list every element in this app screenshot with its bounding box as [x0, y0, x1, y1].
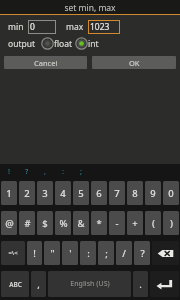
staticText: ! — [8, 166, 11, 176]
button[interactable]: Cancel — [4, 56, 87, 69]
button[interactable]: =\< — [1, 241, 25, 265]
staticText: 0 — [30, 21, 35, 33]
button[interactable]: ( — [145, 211, 161, 235]
staticText: ; — [105, 247, 108, 260]
button[interactable]: & — [73, 211, 89, 235]
button[interactable]: ; — [98, 241, 114, 265]
button[interactable]: / — [116, 241, 132, 265]
staticText: 9 — [150, 187, 156, 200]
button[interactable]: ) — [163, 211, 179, 235]
staticText: ) — [170, 217, 173, 230]
staticText: 0 — [168, 187, 174, 200]
staticText: # — [24, 217, 31, 230]
staticText: =\< — [8, 249, 18, 257]
staticText: OK — [129, 58, 140, 68]
staticText: : — [62, 166, 65, 176]
staticText: 6 — [96, 187, 102, 200]
staticText: 4 — [60, 187, 66, 200]
staticText: ? — [25, 166, 29, 176]
staticText: 3 — [42, 187, 48, 200]
staticText: 1 — [6, 187, 12, 200]
staticText: English (US) — [70, 279, 110, 289]
button[interactable]: + — [127, 211, 143, 235]
button[interactable]: 2 — [19, 181, 35, 205]
button[interactable]: - — [109, 211, 125, 235]
staticText: float — [54, 38, 73, 50]
button[interactable]: Backspace — [152, 241, 179, 265]
staticText: . — [139, 278, 142, 291]
staticText: , — [44, 166, 47, 176]
staticText: - — [115, 217, 119, 230]
staticText: , — [37, 278, 40, 291]
staticText: ( — [152, 217, 155, 230]
staticText: : — [87, 247, 90, 260]
button[interactable]: $ — [37, 211, 53, 235]
button[interactable]: ? — [134, 241, 150, 265]
button[interactable]: 0 — [28, 20, 56, 34]
staticText: & — [77, 217, 85, 230]
staticText: $ — [42, 217, 48, 230]
button[interactable]: 6 — [91, 181, 107, 205]
staticText: 7 — [114, 187, 120, 200]
staticText: % — [59, 217, 68, 230]
button[interactable]: OK — [92, 56, 176, 69]
staticText: 1023 — [90, 21, 110, 33]
staticText: + — [132, 217, 138, 230]
button[interactable]: int — [74, 37, 100, 50]
button[interactable]: " — [44, 241, 60, 265]
staticText: ' — [69, 247, 72, 260]
button[interactable]: ABC — [1, 271, 29, 297]
button[interactable]: ! — [27, 241, 42, 265]
staticText: / — [122, 247, 126, 260]
button[interactable]: ' — [62, 241, 78, 265]
button[interactable]: @ — [1, 211, 17, 235]
staticText: " — [50, 247, 55, 260]
staticText: 5 — [78, 187, 84, 200]
staticText: 2 — [24, 187, 30, 200]
button[interactable]: : — [80, 241, 96, 265]
staticText: @ — [5, 217, 14, 230]
staticText: ! — [33, 247, 36, 260]
button[interactable]: 3 — [37, 181, 53, 205]
staticText: ? — [140, 247, 145, 260]
button[interactable]: 5 — [73, 181, 89, 205]
button[interactable]: 7 — [109, 181, 125, 205]
staticText: 8 — [132, 187, 138, 200]
button[interactable]: 4 — [55, 181, 71, 205]
button[interactable]: Enter — [150, 271, 179, 297]
button[interactable]: 9 — [145, 181, 161, 205]
button[interactable]: % — [55, 211, 71, 235]
staticText: max — [66, 21, 84, 33]
staticText: set min, max — [64, 2, 116, 14]
staticText: int — [88, 38, 99, 50]
button[interactable]: 1023 — [88, 20, 120, 34]
button[interactable]: 1 — [1, 181, 17, 205]
button[interactable]: 8 — [127, 181, 143, 205]
button[interactable]: * — [91, 211, 107, 235]
button[interactable]: English (US) — [48, 271, 131, 297]
button[interactable]: float — [40, 37, 74, 50]
staticText: * — [96, 217, 102, 230]
button[interactable]: , — [31, 271, 46, 297]
button[interactable]: 0 — [163, 181, 179, 205]
staticText: ; — [80, 166, 83, 176]
staticText: Cancel — [34, 58, 58, 68]
staticText: output — [8, 38, 36, 50]
staticText: min — [8, 21, 24, 33]
button[interactable]: # — [19, 211, 35, 235]
staticText: ABC — [9, 280, 22, 289]
button[interactable]: . — [133, 271, 148, 297]
